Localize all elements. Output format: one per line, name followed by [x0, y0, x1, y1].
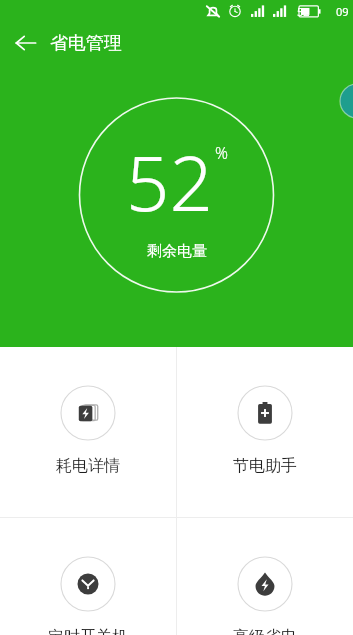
staticText: 52 [126, 130, 213, 234]
button[interactable]: 定时开关机 [0, 518, 176, 635]
staticText: 高级省电 [233, 627, 297, 635]
staticText: 剩余电量 [147, 242, 207, 261]
button[interactable]: 高级省电 [177, 518, 353, 635]
staticText: 52 [297, 4, 310, 19]
button[interactable]: 耗电详情 [0, 347, 176, 517]
staticText: 定时开关机 [48, 627, 128, 635]
staticText: 节电助手 [233, 456, 297, 476]
staticText: 省电管理 [50, 32, 122, 55]
button[interactable]: Back [6, 23, 46, 63]
staticText: % [215, 142, 228, 164]
staticText: 耗电详情 [56, 456, 120, 476]
staticText: 09 [336, 4, 349, 19]
button[interactable]: 节电助手 [177, 347, 353, 517]
